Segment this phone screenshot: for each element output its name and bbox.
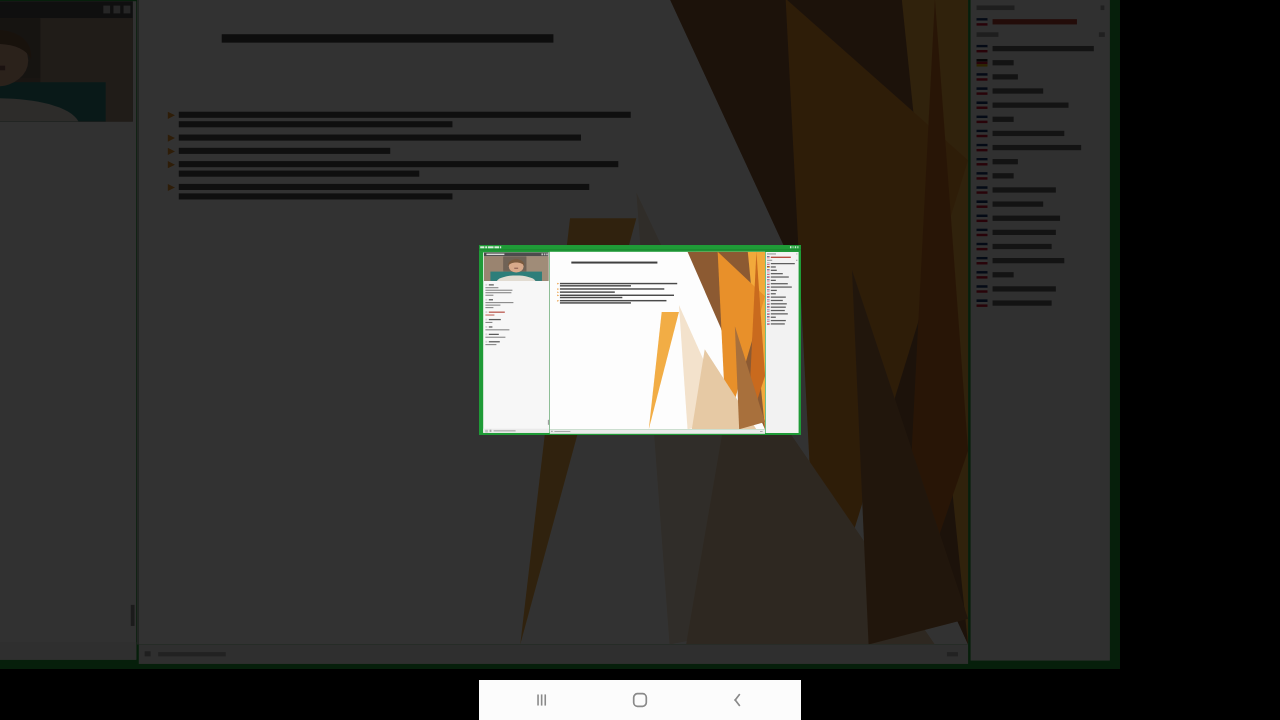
button[interactable]: Home [605, 680, 675, 720]
button[interactable]: Recent apps [507, 680, 577, 720]
button[interactable]: Back [703, 680, 773, 720]
button[interactable] [479, 245, 801, 435]
